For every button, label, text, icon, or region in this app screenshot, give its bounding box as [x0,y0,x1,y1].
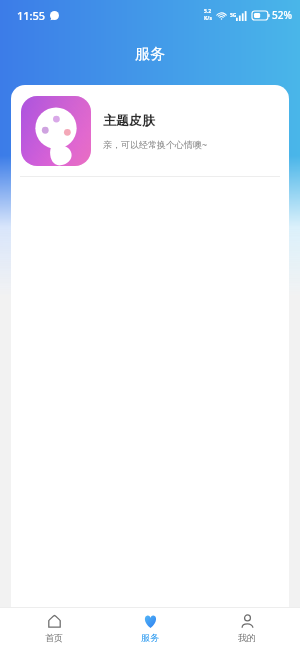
button[interactable]: 我的 [204,608,290,649]
button[interactable]: 首页 [11,608,97,649]
staticText: 5.2 [204,8,212,15]
staticText: 服务 [135,45,165,64]
button[interactable]: 服务 [107,608,193,649]
staticText: 服务 [141,632,159,643]
staticText: K/s [204,15,212,22]
staticText: 11:55 [17,8,46,23]
staticText: 主题皮肤 [103,112,155,128]
button[interactable]: 主题皮肤 [11,85,289,176]
staticText: 我的 [238,632,256,643]
staticText: 首页 [45,632,63,643]
staticText: 5G [230,12,237,19]
staticText: 52% [272,8,292,22]
staticText: 亲，可以经常换个心情噢~ [103,138,208,150]
